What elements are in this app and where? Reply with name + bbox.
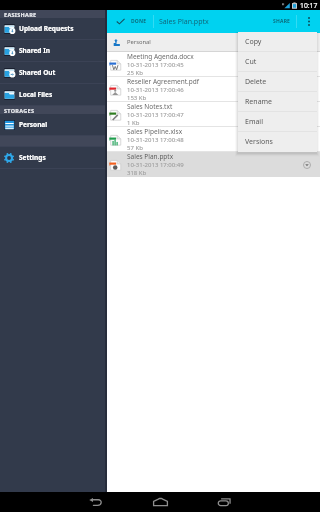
button[interactable]: Shared Out xyxy=(0,62,105,83)
staticText: Settings xyxy=(19,153,46,162)
staticText: DONE xyxy=(131,18,147,25)
staticText: 1 Kb xyxy=(127,119,140,127)
staticText: 10-31-2013 17:00:49 xyxy=(127,161,184,169)
staticText: 10-31-2013 17:00:45 xyxy=(127,61,184,69)
staticText: Delete xyxy=(245,77,267,87)
staticText: Personal xyxy=(19,120,48,129)
staticText: Personal xyxy=(127,38,151,46)
button[interactable]: Personal xyxy=(107,33,320,51)
button[interactable]: Sales Notes.txt xyxy=(107,102,320,127)
button[interactable]: Settings xyxy=(0,147,105,168)
staticText: SHARE xyxy=(273,18,291,25)
button[interactable]: Home xyxy=(138,492,182,512)
staticText: Sales Pipeline.xlsx xyxy=(127,127,183,136)
staticText: 10:17 xyxy=(300,1,318,10)
button[interactable]: Versions xyxy=(238,132,317,152)
button[interactable]: Recents xyxy=(203,492,247,512)
staticText: Sales Plan.pptx xyxy=(127,152,174,161)
button[interactable]: Upload Requests xyxy=(0,18,105,39)
staticText: Shared Out xyxy=(19,68,56,77)
button[interactable]: Shared In xyxy=(0,40,105,61)
staticText: Upload Requests xyxy=(19,24,74,33)
staticText: Email xyxy=(245,117,263,127)
staticText: 10-31-2013 17:00:48 xyxy=(127,136,184,144)
staticText: Copy xyxy=(245,37,262,47)
staticText: 10-31-2013 17:00:46 xyxy=(127,86,184,94)
button[interactable]: Copy xyxy=(238,32,317,52)
button[interactable]: Expand xyxy=(298,156,316,174)
button[interactable]: Local Files xyxy=(0,84,105,105)
staticText: STORAGES xyxy=(4,107,35,114)
button[interactable]: Sales Plan.pptx xyxy=(107,152,320,177)
staticText: 25 Kb xyxy=(127,69,143,77)
staticText: 57 Kb xyxy=(127,144,143,152)
button[interactable]: Delete xyxy=(238,72,317,92)
button[interactable]: SHARE xyxy=(268,10,296,33)
button[interactable]: Email xyxy=(238,112,317,132)
button[interactable]: More options xyxy=(297,10,320,33)
staticText: Shared In xyxy=(19,46,50,55)
staticText: Reseller Agreement.pdf xyxy=(127,77,200,86)
staticText: Sales Notes.txt xyxy=(127,102,173,111)
button[interactable]: Sales Pipeline.xlsx xyxy=(107,127,320,152)
staticText: Cut xyxy=(245,57,257,67)
button[interactable]: Personal xyxy=(0,114,105,135)
staticText: 153 Kb xyxy=(127,94,147,102)
button[interactable]: Reseller Agreement.pdf xyxy=(107,77,320,102)
button[interactable]: Cut xyxy=(238,52,317,72)
button[interactable]: Meeting Agenda.docx xyxy=(107,52,320,77)
button[interactable]: Rename xyxy=(238,92,317,112)
staticText: Versions xyxy=(245,137,273,147)
staticText: 10-31-2013 17:00:47 xyxy=(127,111,184,119)
staticText: Local Files xyxy=(19,90,53,99)
staticText: Rename xyxy=(245,97,273,107)
staticText: Meeting Agenda.docx xyxy=(127,52,194,61)
staticText: EASISHARE xyxy=(4,11,37,18)
button[interactable]: DONE xyxy=(107,10,153,33)
staticText: Sales Plan.pptx xyxy=(159,17,209,27)
staticText: 318 Kb xyxy=(127,169,147,177)
button[interactable]: Back xyxy=(73,492,117,512)
